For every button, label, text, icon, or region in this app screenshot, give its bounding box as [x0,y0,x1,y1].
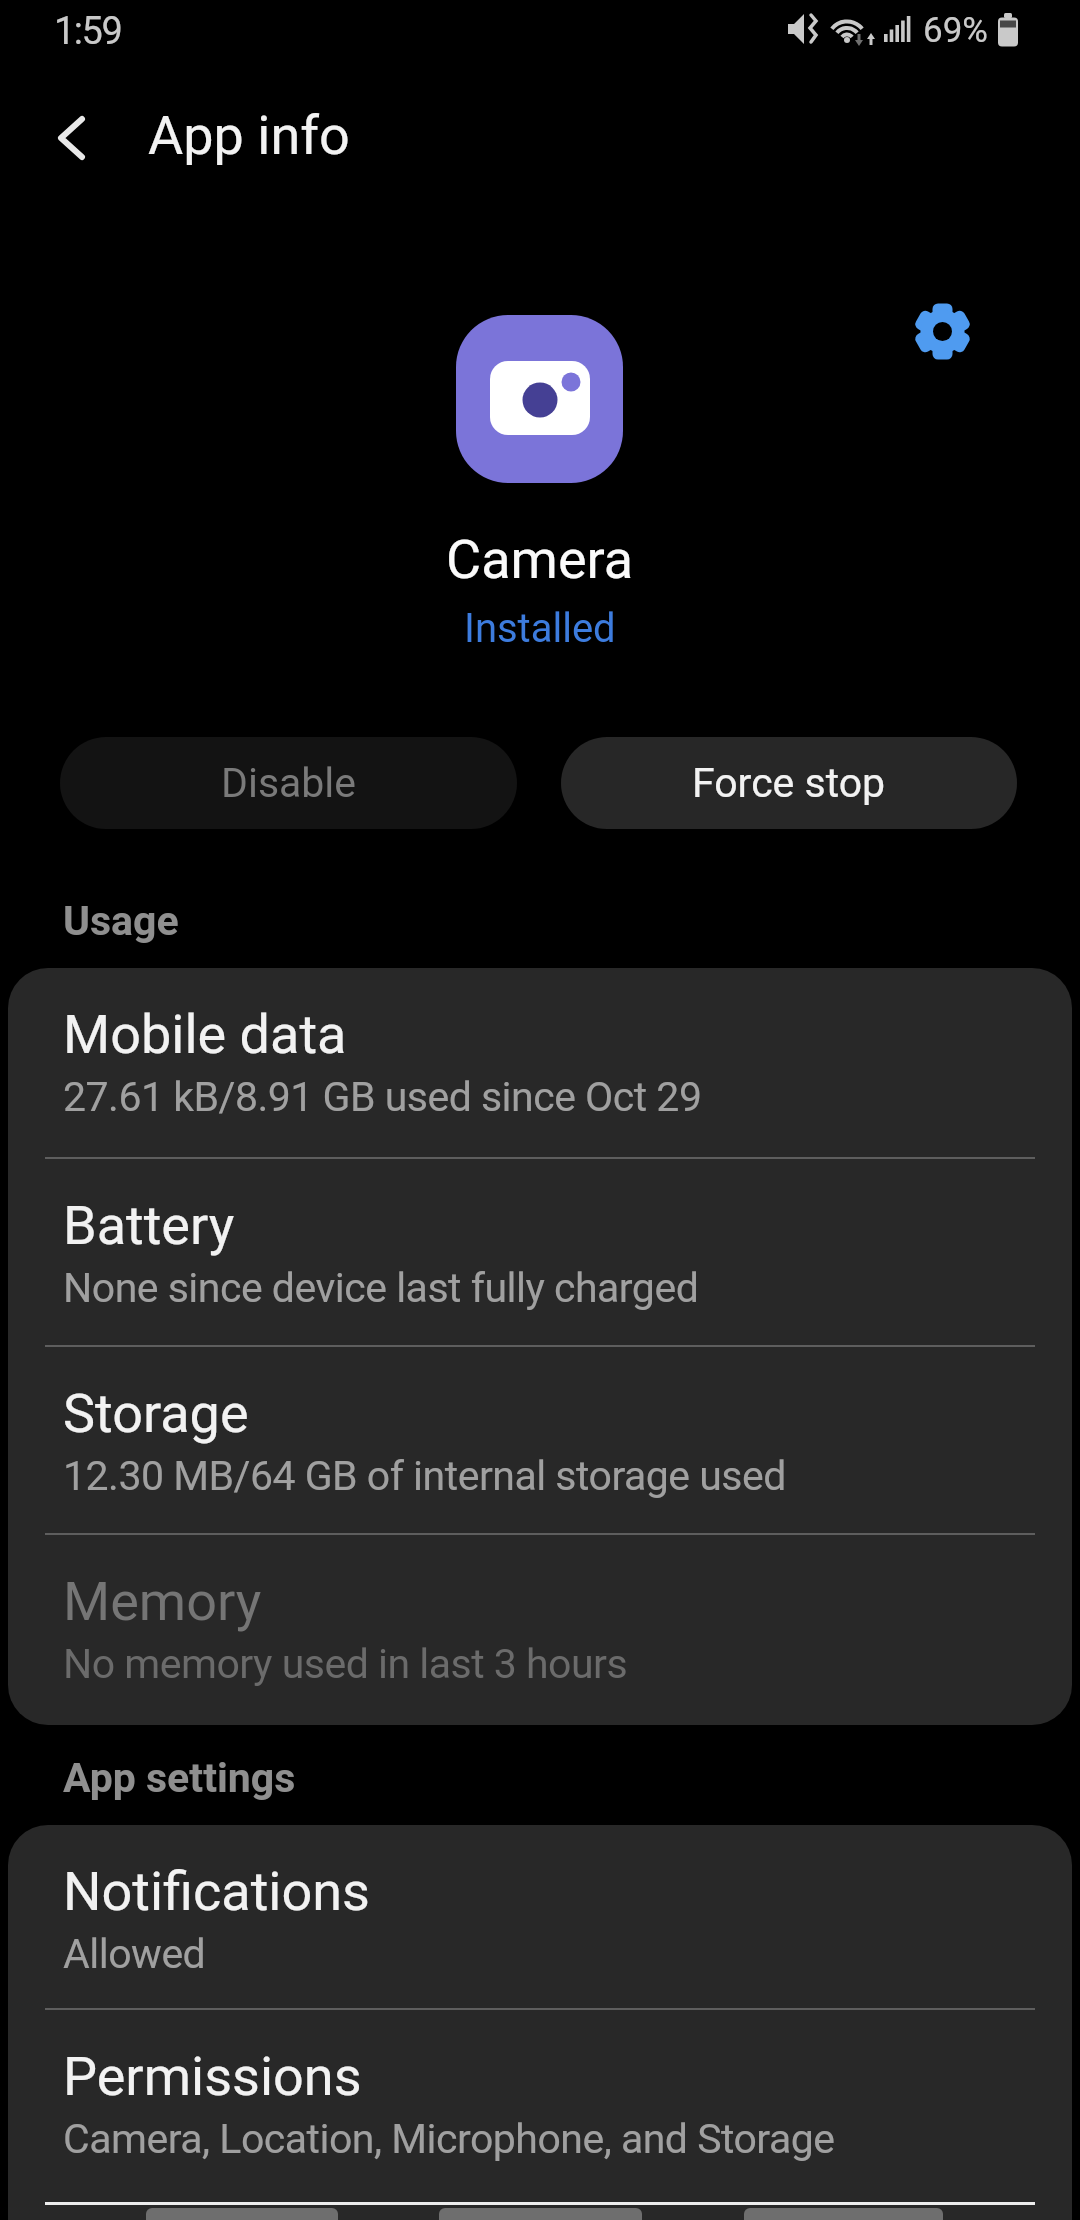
staticText: None since device last fully charged [63,1264,699,1312]
staticText: Disable [221,759,357,807]
button[interactable] [146,2208,338,2220]
button[interactable]: Force stop [561,737,1017,829]
button[interactable]: Storage [8,1347,1072,1533]
button[interactable] [915,302,970,361]
button[interactable]: Mobile data [8,968,1072,1154]
button[interactable]: Notifications [8,1825,1072,2011]
staticText: Camera, Location, Microphone, and Storag… [63,2115,835,2163]
staticText: Memory [63,1570,262,1633]
button[interactable] [40,95,110,175]
staticText: Camera [446,528,634,591]
staticText: 27.61 kB/8.91 GB used since Oct 29 [63,1073,702,1121]
staticText: Storage [63,1382,249,1445]
button[interactable]: Disable [60,737,517,829]
staticText: 69% [923,10,988,51]
staticText: Force stop [692,759,886,807]
button[interactable] [744,2208,943,2220]
staticText: Mobile data [63,1003,347,1066]
staticText: Permissions [63,2045,362,2108]
button[interactable]: Permissions [8,2010,1072,2196]
button[interactable] [439,2208,642,2220]
button[interactable]: Memory [8,1535,1072,1721]
staticText: Battery [63,1194,235,1257]
staticText: App info [148,104,350,167]
staticText: Allowed [63,1930,206,1978]
staticText: Installed [464,605,616,652]
staticText: 12.30 MB/64 GB of internal storage used [63,1452,786,1500]
staticText: Notifications [63,1860,370,1923]
staticText: No memory used in last 3 hours [63,1640,628,1688]
staticText: Usage [63,897,179,945]
staticText: App settings [63,1754,296,1802]
button[interactable]: Battery [8,1159,1072,1345]
staticText: 1:59 [54,9,122,54]
